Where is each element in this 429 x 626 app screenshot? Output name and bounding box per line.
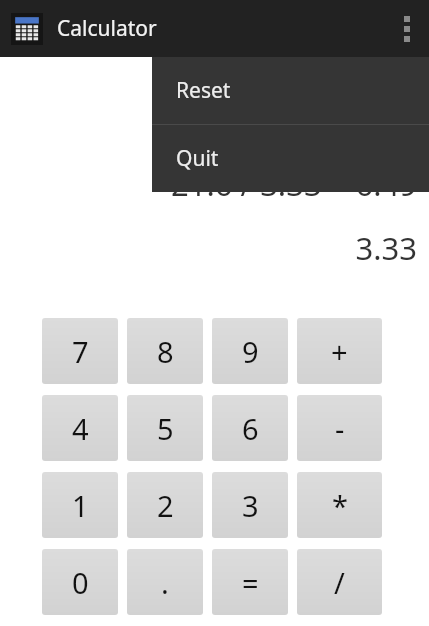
- staticText: -: [335, 409, 345, 448]
- button[interactable]: 8: [127, 318, 203, 384]
- staticText: 6: [242, 409, 259, 448]
- button[interactable]: -: [297, 395, 382, 461]
- staticText: 4: [399, 115, 417, 157]
- button[interactable]: 5: [127, 395, 203, 461]
- button[interactable]: More options: [385, 0, 429, 57]
- button[interactable]: Reset: [152, 57, 429, 124]
- staticText: Quit: [176, 144, 219, 173]
- button[interactable]: 2: [127, 472, 203, 538]
- staticText: 9: [242, 332, 259, 371]
- button[interactable]: .: [127, 549, 203, 615]
- button[interactable]: 6: [212, 395, 288, 461]
- staticText: 21.6 / 3.33 = 6.49: [170, 163, 417, 205]
- button[interactable]: *: [297, 472, 382, 538]
- staticText: 0: [72, 563, 89, 602]
- button[interactable]: Quit: [152, 125, 429, 192]
- button[interactable]: 9: [212, 318, 288, 384]
- button[interactable]: 4: [42, 395, 118, 461]
- staticText: 3: [242, 486, 259, 525]
- staticText: *: [332, 486, 348, 525]
- staticText: 7: [72, 332, 89, 371]
- staticText: =: [242, 563, 259, 602]
- staticText: +: [331, 332, 348, 371]
- button[interactable]: +: [297, 318, 382, 384]
- staticText: 3.33: [355, 227, 417, 269]
- button[interactable]: =: [212, 549, 288, 615]
- staticText: 2: [157, 486, 174, 525]
- button[interactable]: 1: [42, 472, 118, 538]
- button[interactable]: 7: [42, 318, 118, 384]
- button[interactable]: 0: [42, 549, 118, 615]
- staticText: Reset: [176, 76, 231, 105]
- staticText: 5: [157, 409, 174, 448]
- button[interactable]: /: [297, 549, 382, 615]
- staticText: 8: [157, 332, 174, 371]
- staticText: 1: [72, 486, 89, 525]
- staticText: Calculator: [57, 14, 157, 43]
- staticText: .: [161, 563, 169, 602]
- staticText: 4: [72, 409, 89, 448]
- button[interactable]: 3: [212, 472, 288, 538]
- staticText: /: [334, 563, 345, 602]
